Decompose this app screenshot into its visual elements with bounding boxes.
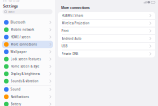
staticText: More connections [61,5,90,10]
button[interactable]: Sounds & vibration [2,77,53,85]
staticText: Display & brightness [11,72,40,76]
button[interactable]: USB [58,42,155,50]
button[interactable]: HUAWEI Share [58,12,155,19]
staticText: HUAWEI Share [61,14,83,18]
staticText: Notifications [11,95,29,99]
staticText: Battery [11,102,21,106]
button[interactable]: Bluetooth [2,19,53,26]
staticText: Print [61,29,68,33]
button[interactable]: Battery [2,100,53,106]
button[interactable]: Notifications [2,93,53,100]
button[interactable]: Display & brightness [2,70,53,77]
staticText: Wallpaper [11,50,27,54]
button[interactable]: Print [58,27,155,34]
button[interactable]: HDMI / screen [2,33,53,41]
staticText: Android Auto [61,36,81,40]
staticText: 9:41 Tue 12 Mar [2,0,19,2]
staticText: Wireless Projection [61,21,89,25]
staticText: Sounds & vibration [11,79,39,83]
staticText: Search [8,10,15,13]
staticText: USB [61,44,67,48]
staticText: Private DNS [61,52,78,56]
staticText: Sound [11,87,21,91]
staticText: Lock screen features [11,57,41,61]
staticText: Settings [3,3,18,8]
button[interactable]: Android Auto [58,34,155,42]
staticText: HDMI / screen [11,35,31,39]
staticText: Home screen & style [11,64,40,68]
button[interactable]: More connections [2,41,53,48]
button[interactable]: Wallpaper [2,48,53,55]
button[interactable]: Mobile network [2,26,53,33]
staticText: Mobile network [11,28,35,32]
staticText: Bluetooth [11,20,26,24]
button[interactable]: Home screen & style [2,63,53,70]
button[interactable]: Lock screen features [2,55,53,63]
staticText: More connections [11,42,37,46]
button[interactable]: Wireless Projection [58,19,155,27]
button[interactable]: Sound [2,86,53,93]
button[interactable]: Private DNS [58,50,155,57]
